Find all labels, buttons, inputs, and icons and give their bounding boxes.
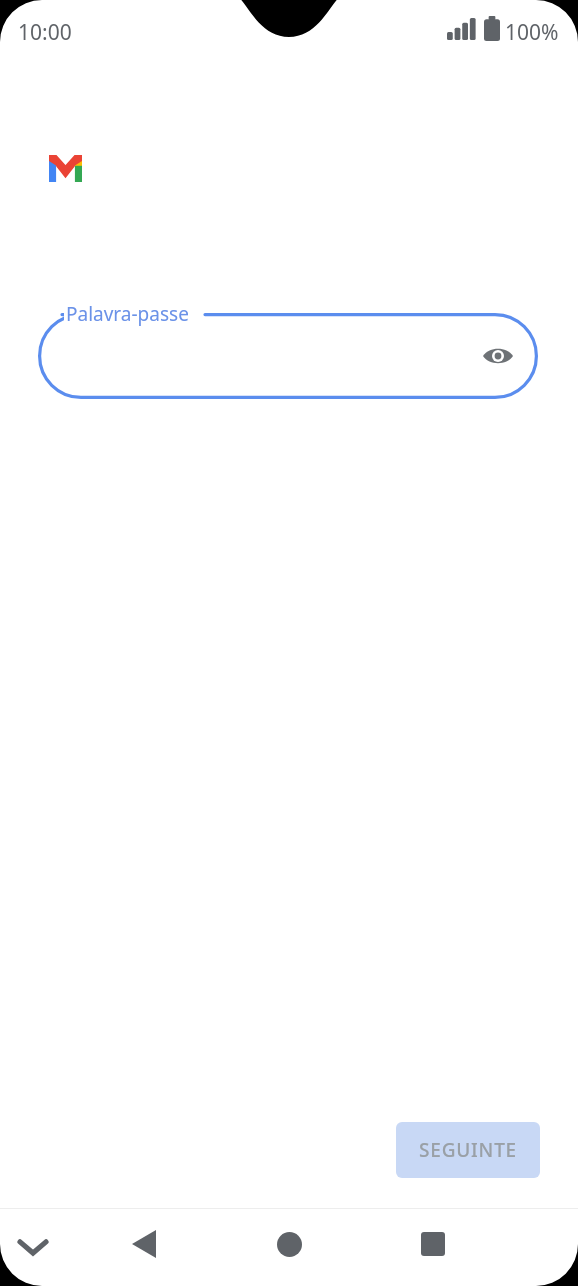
staticText: 10:00	[18, 18, 72, 47]
button[interactable]: Show password	[474, 332, 522, 380]
staticText: SEGUINTE	[419, 1137, 517, 1163]
staticText: Palavra-passe	[66, 301, 189, 327]
button[interactable]: Hide keyboard	[8, 1222, 58, 1272]
staticText: 100%	[505, 18, 559, 47]
button[interactable]: Recent apps	[407, 1218, 459, 1270]
button[interactable]: Home	[263, 1218, 315, 1270]
button[interactable]: Back	[118, 1218, 170, 1270]
button[interactable]: SEGUINTE	[396, 1122, 540, 1178]
button[interactable]: Palavra-passe	[38, 313, 538, 399]
